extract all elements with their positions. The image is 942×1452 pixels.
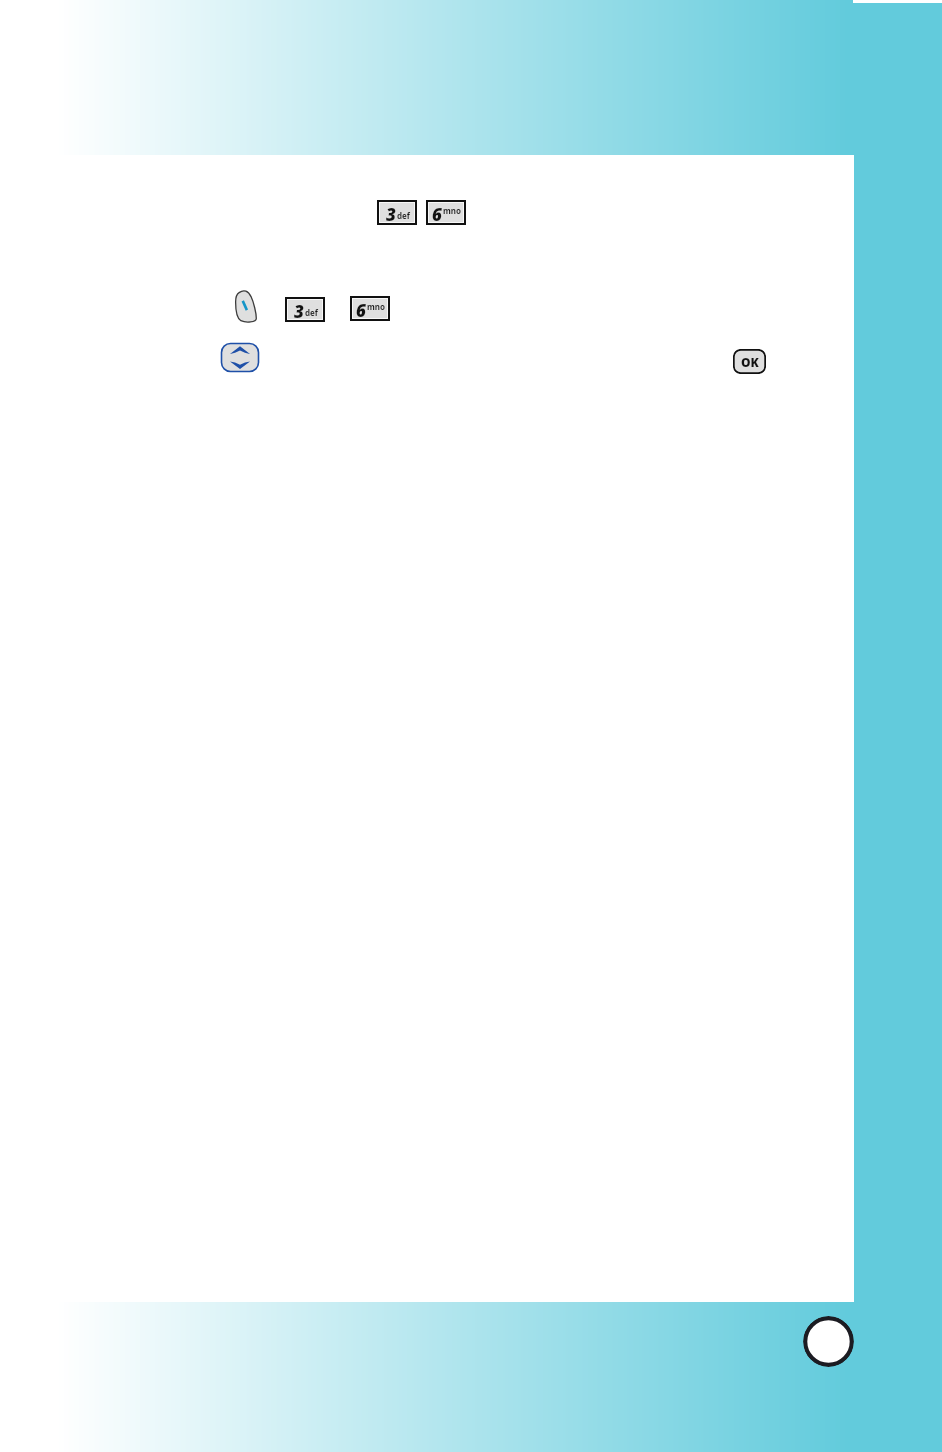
staticText: 3 (386, 203, 396, 222)
staticText: mno (443, 205, 461, 216)
button[interactable]: 6 (353, 299, 387, 318)
staticText: def (397, 210, 410, 221)
button[interactable]: 6 (429, 203, 463, 222)
staticText: def (305, 307, 318, 318)
staticText: 6 (432, 203, 442, 222)
staticText: 6 (356, 299, 366, 318)
button[interactable]: OK (733, 349, 766, 374)
staticText: 3 (294, 300, 304, 319)
staticText: mno (367, 301, 385, 312)
staticText: OK (741, 354, 759, 370)
button[interactable]: Navigation key up down (220, 342, 260, 373)
button[interactable]: Soft key (234, 290, 257, 323)
button[interactable]: 3 (288, 300, 322, 319)
button[interactable]: Page number (803, 1316, 854, 1367)
button[interactable]: 3 (380, 203, 414, 222)
